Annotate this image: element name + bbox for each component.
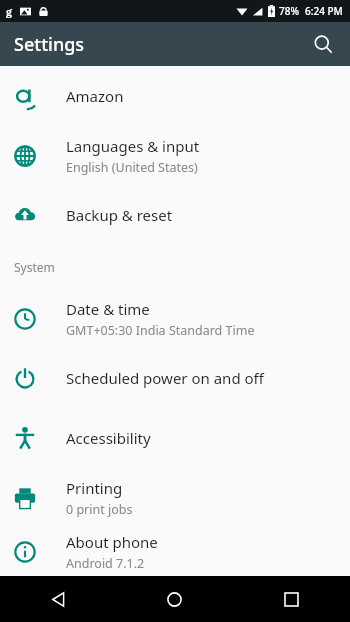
staticText: Languages & input: [66, 136, 200, 156]
button[interactable]: Back: [0, 576, 116, 622]
staticText: 78%: [279, 4, 299, 18]
button[interactable]: Accessibility: [0, 408, 350, 468]
button[interactable]: About phone: [0, 527, 350, 576]
staticText: Date & time: [66, 299, 150, 319]
button[interactable]: Search: [304, 25, 342, 63]
staticText: About phone: [66, 532, 158, 552]
button[interactable]: Printing: [0, 468, 350, 527]
button[interactable]: Recent apps: [233, 576, 350, 622]
staticText: Android 7.1.2: [66, 555, 145, 572]
staticText: GMT+05:30 India Standard Time: [66, 322, 255, 339]
staticText: 6:24 PM: [305, 4, 343, 18]
staticText: Scheduled power on and off: [66, 368, 264, 388]
button[interactable]: Date & time: [0, 289, 350, 348]
staticText: Settings: [14, 32, 85, 57]
staticText: English (United States): [66, 159, 198, 176]
button[interactable]: Home: [116, 576, 233, 622]
staticText: g: [6, 4, 13, 19]
staticText: System: [14, 259, 55, 275]
button[interactable]: Backup & reset: [0, 185, 350, 245]
staticText: Backup & reset: [66, 205, 173, 225]
staticText: Printing: [66, 478, 123, 498]
button[interactable]: Amazon: [0, 66, 350, 126]
staticText: Amazon: [66, 86, 124, 106]
staticText: Accessibility: [66, 428, 151, 448]
staticText: 0 print jobs: [66, 501, 133, 518]
button[interactable]: Scheduled power on and off: [0, 348, 350, 408]
button[interactable]: Languages & input: [0, 126, 350, 185]
